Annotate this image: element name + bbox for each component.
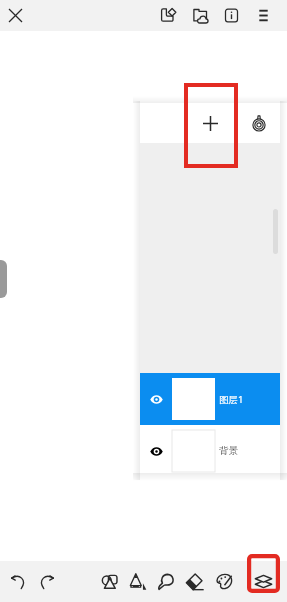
- button[interactable]: 图层1: [140, 373, 280, 425]
- staticText: 背景: [219, 445, 238, 457]
- button[interactable]: Reference layer: [246, 110, 272, 136]
- button[interactable]: Menu: [248, 0, 279, 31]
- button[interactable]: Add layer: [193, 106, 227, 140]
- button[interactable]: Smudge: [153, 561, 180, 602]
- button[interactable]: Layers: [250, 561, 277, 602]
- staticText: 图层1: [219, 393, 244, 406]
- button[interactable]: Panel handle: [0, 260, 7, 298]
- button[interactable]: Eraser: [181, 561, 208, 602]
- button[interactable]: Undo: [5, 561, 32, 602]
- button[interactable]: Brush: [124, 561, 151, 602]
- button[interactable]: 背景: [140, 425, 280, 473]
- button[interactable]: Export: [153, 0, 184, 31]
- button[interactable]: Shapes: [97, 561, 124, 602]
- button[interactable]: Palette: [211, 561, 238, 602]
- button[interactable]: Cloud files: [185, 0, 216, 31]
- button[interactable]: Close: [2, 0, 29, 31]
- button[interactable]: Info: [216, 0, 247, 31]
- button[interactable]: Redo: [33, 561, 60, 602]
